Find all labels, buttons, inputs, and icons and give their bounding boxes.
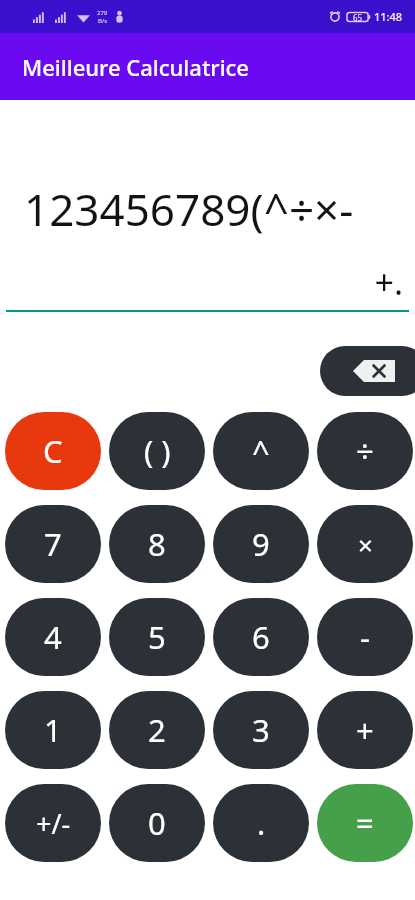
button[interactable]: ( )	[109, 412, 205, 490]
staticText: ×	[358, 527, 373, 562]
button[interactable]: ÷	[317, 412, 413, 490]
staticText: .	[257, 802, 266, 844]
button[interactable]: +/-	[5, 784, 101, 862]
button[interactable]: 1	[5, 691, 101, 769]
button[interactable]: 7	[5, 505, 101, 583]
button[interactable]: 5	[109, 598, 205, 676]
staticText: 4	[44, 616, 62, 658]
button[interactable]: 8	[109, 505, 205, 583]
staticText: ^	[252, 430, 270, 472]
staticText: 123456789(^÷×-	[24, 179, 354, 239]
staticText: B/s	[98, 17, 108, 25]
button[interactable]: 9	[213, 505, 309, 583]
staticText: 3	[252, 709, 270, 751]
staticText: -	[360, 616, 370, 658]
button[interactable]: -	[317, 598, 413, 676]
button[interactable]: ^	[213, 412, 309, 490]
button[interactable]: =	[317, 784, 413, 862]
staticText: 2	[148, 709, 166, 751]
staticText: =	[356, 802, 374, 844]
staticText: ( )	[144, 430, 171, 472]
staticText: +.	[374, 259, 403, 305]
button[interactable]: ×	[317, 505, 413, 583]
button[interactable]: 4	[5, 598, 101, 676]
button[interactable]: +	[317, 691, 413, 769]
button[interactable]: .	[213, 784, 309, 862]
staticText: +/-	[36, 805, 71, 842]
staticText: 65	[353, 12, 363, 23]
button[interactable]: 2	[109, 691, 205, 769]
staticText: 6	[252, 616, 270, 658]
staticText: 279	[97, 9, 108, 17]
staticText: 1	[44, 709, 62, 751]
button[interactable]: 0	[109, 784, 205, 862]
staticText: Meilleure Calculatrice	[22, 52, 249, 82]
button[interactable]: Backspace	[320, 346, 415, 396]
staticText: 7	[44, 523, 62, 565]
staticText: +	[356, 709, 374, 751]
staticText: 0	[148, 802, 166, 844]
staticText: C	[43, 430, 63, 472]
staticText: 11:48	[374, 9, 403, 24]
staticText: 8	[148, 523, 166, 565]
button[interactable]: 6	[213, 598, 309, 676]
button[interactable]: 3	[213, 691, 309, 769]
staticText: ÷	[356, 430, 374, 472]
staticText: 9	[252, 523, 270, 565]
button[interactable]: C	[5, 412, 101, 490]
staticText: 5	[148, 616, 166, 658]
